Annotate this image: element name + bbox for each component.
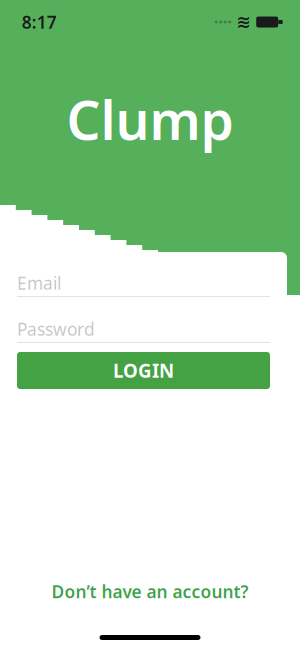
staticText: 8:17 — [22, 10, 57, 33]
button[interactable]: LOGIN — [17, 352, 270, 389]
staticText: Password — [17, 317, 95, 340]
staticText: LOGIN — [113, 358, 174, 383]
staticText: Don’t have an account? — [51, 580, 248, 603]
staticText: Clump — [66, 84, 233, 155]
staticText: Email — [17, 271, 61, 294]
staticText: ≋ — [236, 12, 251, 32]
button[interactable]: Don’t have an account? — [37, 574, 262, 609]
